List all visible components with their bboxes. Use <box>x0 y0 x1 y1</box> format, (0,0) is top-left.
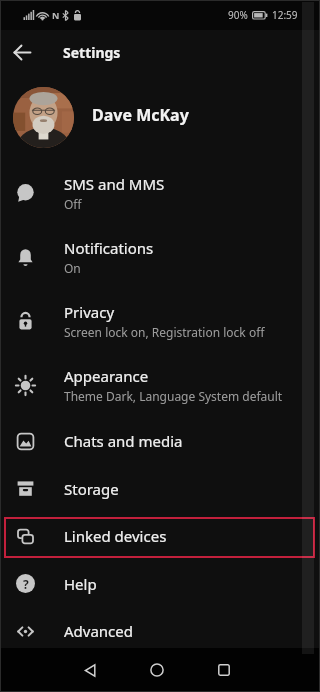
staticText: Appearance <box>64 366 149 386</box>
staticText: Settings <box>63 43 121 62</box>
button[interactable] <box>68 648 112 692</box>
staticText: 12:59 <box>272 8 298 22</box>
staticText: Chats and media <box>64 431 183 451</box>
staticText: Off <box>64 196 82 212</box>
button[interactable]: Linked devices <box>0 512 320 560</box>
button[interactable] <box>135 648 179 692</box>
button[interactable]: Storage <box>0 465 320 512</box>
button[interactable] <box>0 30 44 74</box>
staticText: Privacy <box>64 302 115 322</box>
staticText: Advanced <box>64 621 134 641</box>
button[interactable]: Privacy <box>0 289 320 353</box>
staticText: Dave McKay <box>92 104 189 126</box>
button[interactable] <box>202 648 246 692</box>
staticText: SMS and MMS <box>64 174 165 194</box>
staticText: Help <box>64 574 97 594</box>
staticText: Storage <box>64 479 119 499</box>
button[interactable]: SMS and MMS <box>0 161 320 225</box>
staticText: On <box>64 260 81 276</box>
button[interactable]: Chats and media <box>0 417 320 465</box>
staticText: 90% <box>228 8 248 22</box>
button[interactable]: Advanced <box>0 607 320 655</box>
button[interactable]: ? <box>0 560 320 607</box>
button[interactable]: Dave McKay <box>0 74 320 161</box>
staticText: Theme Dark, Language System default <box>64 388 283 404</box>
staticText: Screen lock on, Registration lock off <box>64 324 265 340</box>
staticText: Notifications <box>64 238 154 258</box>
staticText: ? <box>23 576 29 592</box>
staticText: Linked devices <box>64 526 167 546</box>
staticText: N <box>52 9 60 21</box>
button[interactable]: Notifications <box>0 225 320 289</box>
button[interactable]: Appearance <box>0 353 320 417</box>
